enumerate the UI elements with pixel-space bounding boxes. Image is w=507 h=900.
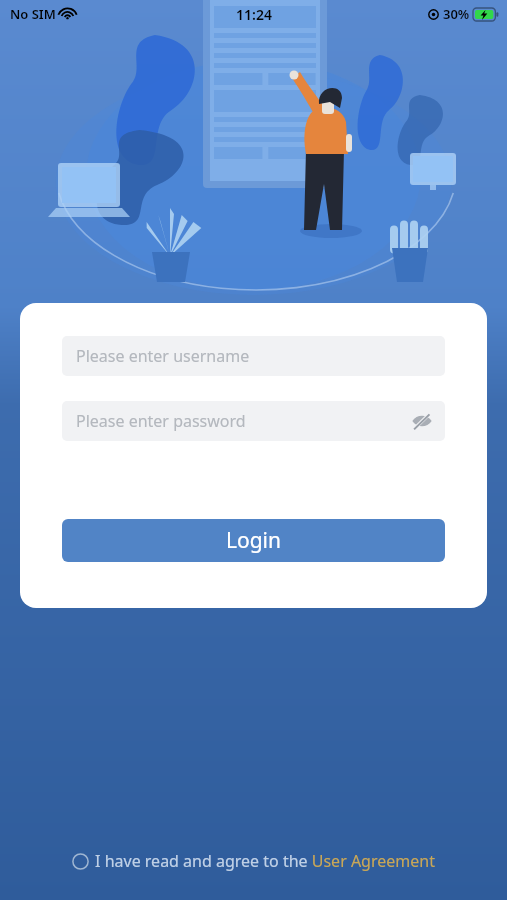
staticText: I have read and agree to the User Agreem… [95, 850, 435, 872]
button[interactable]: I have read and agree to the User Agreem… [72, 850, 435, 872]
button[interactable]: Login [62, 519, 445, 562]
button[interactable]: Please enter password [62, 401, 445, 441]
staticText: Login [226, 526, 282, 555]
staticText: No SIM [10, 5, 56, 23]
staticText: Please enter username [76, 345, 250, 367]
staticText: 11:24 [236, 5, 272, 24]
staticText: Please enter password [76, 410, 246, 432]
staticText: 30% [443, 5, 470, 23]
button[interactable]: Please enter username [62, 336, 445, 376]
button[interactable]: Show password [407, 406, 437, 436]
